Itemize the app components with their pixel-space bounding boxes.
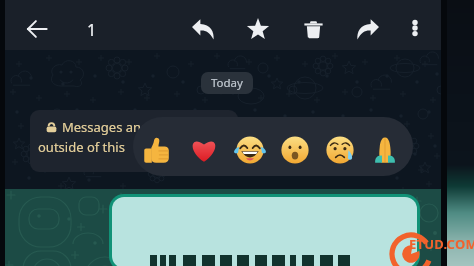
button[interactable]: Sad [321, 131, 359, 169]
button[interactable]: Back [19, 11, 55, 47]
button[interactable]: Haha [231, 131, 269, 169]
button[interactable]: Like [138, 131, 176, 169]
staticText: Messages and [62, 118, 150, 136]
staticText: Today [211, 75, 243, 91]
button[interactable]: Wow [276, 131, 314, 169]
button[interactable]: Love [185, 131, 223, 169]
button[interactable]: Today [201, 72, 253, 94]
button[interactable]: Messages and [30, 110, 238, 172]
button[interactable]: Delete [295, 11, 331, 47]
button[interactable]: More options [397, 10, 433, 46]
button[interactable]: Forward [350, 11, 386, 47]
staticText: 1 [87, 19, 97, 41]
button[interactable]: Reply [185, 11, 221, 47]
button[interactable]: Star [240, 11, 276, 47]
staticText: outside of this [38, 138, 125, 156]
staticText: ETUD.COM [409, 235, 474, 253]
button[interactable]: Pray [366, 131, 404, 169]
